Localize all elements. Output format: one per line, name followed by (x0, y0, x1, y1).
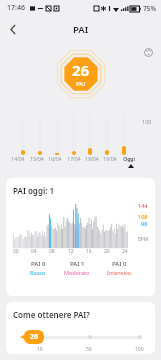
staticText: 00 (13, 248, 19, 255)
staticText: 17/04 (66, 156, 82, 163)
button[interactable]: Back (0, 16, 26, 42)
staticText: PAI (76, 80, 86, 88)
staticText: 50 (86, 346, 92, 353)
staticText: 26 (72, 60, 90, 80)
staticText: 16 (86, 248, 92, 255)
staticText: PAI 1 (70, 260, 85, 268)
staticText: 24 (122, 248, 128, 255)
staticText: 04 (31, 248, 37, 255)
staticText: 75% (143, 4, 156, 13)
staticText: 18/04 (84, 156, 100, 163)
staticText: PAI 0 (112, 260, 127, 268)
staticText: 96 (141, 220, 148, 227)
button[interactable]: PAI oggi: 1 (6, 178, 155, 296)
staticText: 20 (104, 248, 110, 255)
staticText: 14/04 (10, 156, 26, 163)
staticText: 15/04 (29, 156, 45, 163)
staticText: Intensivo (107, 269, 131, 276)
staticText: PAI (73, 23, 89, 36)
button[interactable]: Help (140, 44, 156, 60)
staticText: 100 (142, 118, 152, 125)
staticText: BPM (138, 236, 148, 242)
staticText: 08 (49, 248, 55, 255)
staticText: 16/04 (47, 156, 63, 163)
staticText: 144 (138, 202, 148, 209)
staticText: Moderato (64, 269, 90, 276)
staticText: PAI oggi: 1 (13, 185, 55, 196)
staticText: Basso (30, 269, 46, 276)
staticText: Come ottenere PAI? (13, 309, 90, 320)
staticText: PAI 0 (31, 260, 46, 268)
staticText: 19/04 (102, 156, 118, 163)
staticText: 100 (135, 346, 144, 353)
staticText: 10 (37, 346, 43, 353)
staticText: 108 (138, 213, 148, 220)
staticText: 12 (68, 248, 74, 255)
button[interactable]: Come ottenere PAI? (6, 302, 155, 354)
staticText: Oggi (121, 156, 137, 163)
staticText: 17:46 (7, 3, 25, 13)
staticText: 26 (30, 332, 39, 342)
